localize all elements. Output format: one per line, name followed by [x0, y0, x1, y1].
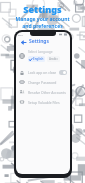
staticText: Change Password: [28, 80, 57, 85]
staticText: Select Language: [28, 50, 53, 54]
staticText: Arabic: [49, 57, 58, 61]
button[interactable]: Setup Valuable Files: [16, 97, 70, 107]
staticText: and preferences: [22, 23, 63, 30]
button[interactable]: Toggle lock on close: [59, 70, 67, 75]
button[interactable]: English: [28, 56, 45, 62]
button[interactable]: Arabic: [47, 56, 60, 62]
button[interactable]: Back: [19, 38, 27, 46]
staticText: English: [33, 57, 44, 61]
staticText: Settings: [29, 38, 49, 45]
staticText: Settings: [23, 3, 62, 15]
staticText: 9:41: [18, 33, 23, 36]
button[interactable]: Lock app on close: [16, 68, 70, 77]
staticText: Manage your account: [15, 16, 70, 23]
button[interactable]: Change Password: [16, 77, 70, 87]
staticText: Setup Valuable Files: [28, 100, 60, 105]
button[interactable]: Resolve Other Accounts: [16, 87, 70, 97]
staticText: Lock app on close: [28, 70, 57, 75]
staticText: Resolve Other Accounts: [28, 90, 66, 95]
